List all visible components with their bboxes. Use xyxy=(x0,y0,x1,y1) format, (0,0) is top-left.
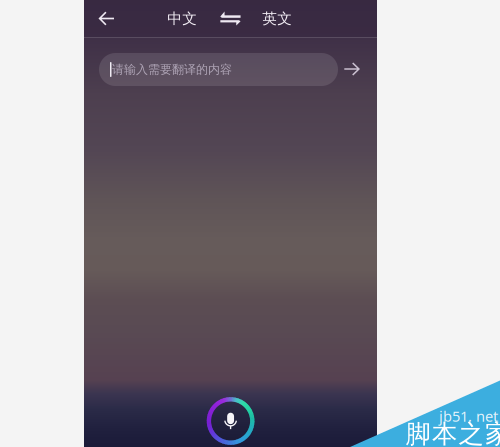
button[interactable]: 中文 xyxy=(159,0,205,37)
button[interactable]: Swap languages xyxy=(211,0,249,37)
button[interactable]: Voice input xyxy=(205,395,257,447)
button[interactable]: Translate xyxy=(335,53,369,86)
button[interactable]: 英文 xyxy=(254,0,300,37)
button[interactable]: 请输入需要翻译的内容 xyxy=(99,53,338,86)
staticText: 英文 xyxy=(262,9,292,27)
staticText: 脚本之家 xyxy=(405,418,500,447)
staticText: jb51. net xyxy=(439,406,498,426)
staticText: 中文 xyxy=(167,9,197,27)
button[interactable]: Back xyxy=(87,0,127,37)
staticText: 请输入需要翻译的内容 xyxy=(112,62,232,77)
